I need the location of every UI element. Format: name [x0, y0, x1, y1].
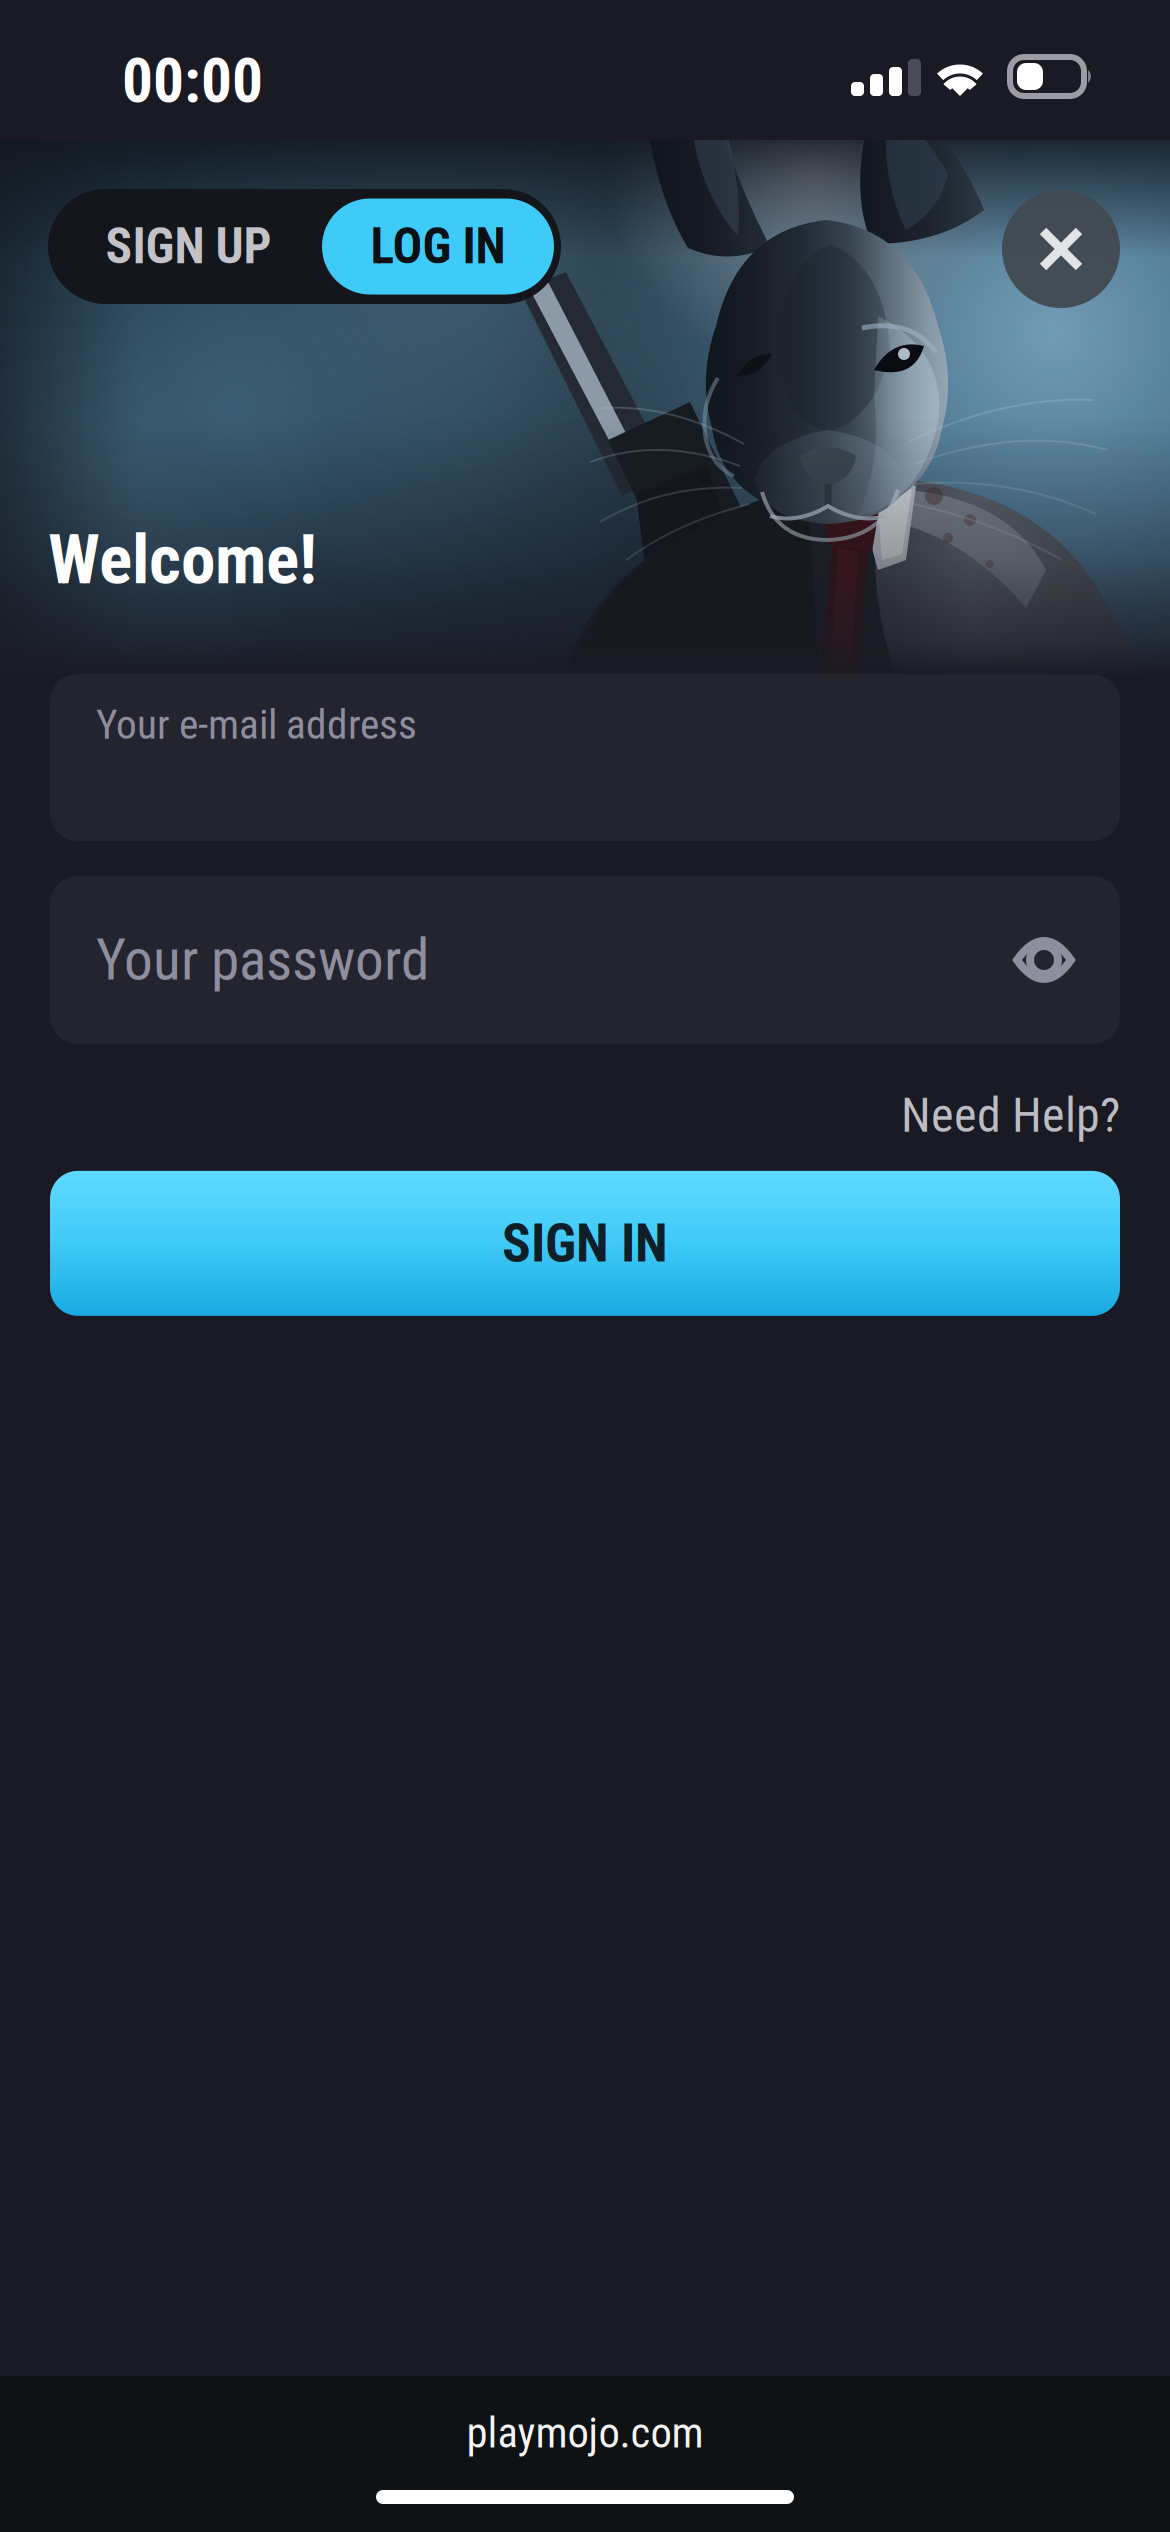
staticText: SIGN UP: [105, 218, 271, 275]
staticText: Welcome!: [48, 520, 317, 599]
button[interactable]: Show password: [1014, 933, 1074, 987]
staticText: 00:00: [122, 46, 263, 116]
staticText: LOG IN: [370, 218, 505, 275]
button[interactable]: LOG IN: [322, 196, 554, 297]
staticText: Your password: [96, 927, 429, 993]
button[interactable]: Need Help?: [871, 1068, 1120, 1163]
staticText: Need Help?: [901, 1088, 1120, 1143]
button[interactable]: SIGN UP: [55, 196, 322, 297]
staticText: Your e-mail address: [96, 701, 417, 748]
button[interactable]: SIGN IN: [50, 1171, 1120, 1316]
button[interactable]: Close: [1002, 190, 1120, 308]
staticText: playmojo.com: [466, 2409, 703, 2457]
staticText: SIGN IN: [502, 1213, 668, 1274]
